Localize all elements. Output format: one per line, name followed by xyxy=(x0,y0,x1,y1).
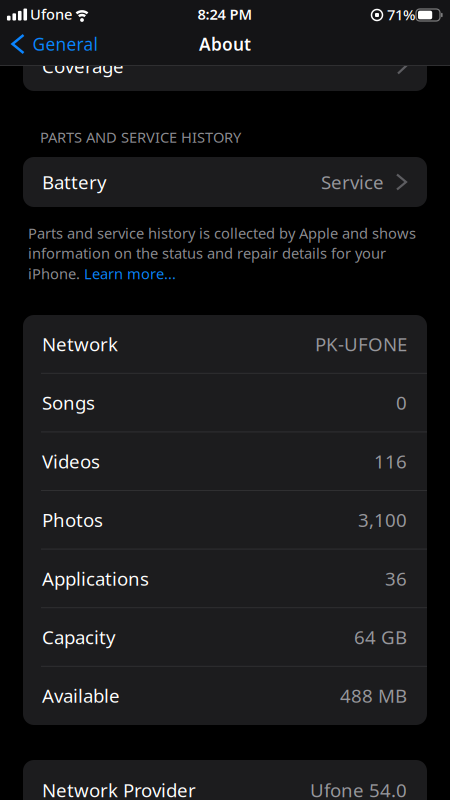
staticText: 8:24 PM xyxy=(197,4,252,24)
staticText: Service xyxy=(321,170,384,194)
staticText: Photos xyxy=(42,507,103,532)
staticText: Applications xyxy=(42,566,149,591)
staticText: General xyxy=(32,32,97,55)
staticText: Ufone 54.0 xyxy=(310,778,407,800)
staticText: Parts and service history is collected b… xyxy=(28,223,416,243)
staticText: iPhone. xyxy=(28,264,84,283)
staticText: Songs xyxy=(42,390,95,415)
button[interactable]: Battery xyxy=(23,157,427,207)
staticText: 0 xyxy=(396,390,407,415)
staticText: 116 xyxy=(374,449,407,474)
staticText: 3,100 xyxy=(358,507,407,532)
button[interactable]: Coverage xyxy=(23,41,427,91)
staticText: Battery xyxy=(42,170,107,194)
staticText: PK-UFONE xyxy=(315,332,407,356)
staticText: Ufone xyxy=(30,4,72,24)
staticText: information on the status and repair det… xyxy=(28,243,386,263)
staticText: Coverage xyxy=(42,54,124,78)
staticText: About xyxy=(199,32,251,55)
staticText: Videos xyxy=(42,449,100,474)
staticText: Available xyxy=(42,683,120,708)
staticText: Network Provider xyxy=(42,778,196,800)
staticText: Capacity xyxy=(42,625,116,649)
staticText: 64 GB xyxy=(354,625,407,649)
staticText: 71% xyxy=(387,5,415,24)
button[interactable]: Back xyxy=(12,32,97,55)
button[interactable]: Learn more... xyxy=(84,264,176,283)
staticText: Network xyxy=(42,332,118,356)
staticText: Learn more... xyxy=(84,264,176,283)
staticText: 488 MB xyxy=(340,683,407,708)
staticText: 36 xyxy=(385,566,407,591)
staticText: PARTS AND SERVICE HISTORY xyxy=(40,127,241,147)
